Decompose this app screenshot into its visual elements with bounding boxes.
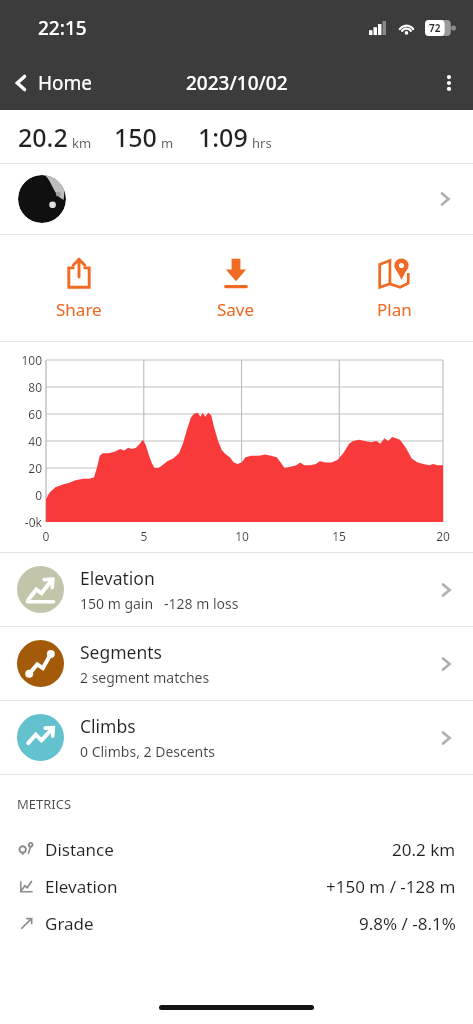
staticText: Save	[217, 298, 255, 321]
staticText: 1:09	[198, 120, 248, 154]
button[interactable]: Save	[157, 235, 315, 341]
staticText: Elevation	[80, 566, 155, 590]
staticText: Elevation	[45, 875, 118, 898]
staticText: 150 m gain -128 m loss	[80, 594, 239, 613]
staticText: hrs	[252, 134, 272, 152]
staticText: 60	[4, 406, 42, 422]
staticText: -0k	[4, 514, 42, 530]
button[interactable]: Elevation	[17, 868, 456, 905]
button[interactable]	[0, 164, 473, 234]
staticText: 20	[4, 460, 42, 476]
button[interactable]: Elevation	[0, 553, 473, 626]
staticText: 9.8% / -8.1%	[359, 912, 456, 935]
staticText: 20.2 km	[392, 838, 456, 861]
button[interactable]: Home	[0, 61, 105, 105]
staticText: 0 Climbs, 2 Descents	[80, 742, 216, 761]
staticText: 2023/10/02	[186, 70, 288, 96]
button[interactable]: Plan	[315, 235, 473, 341]
staticText: Distance	[45, 838, 114, 861]
button[interactable]: Share	[0, 235, 157, 341]
staticText: km	[72, 134, 92, 152]
staticText: 15	[329, 528, 349, 544]
staticText: 20	[433, 528, 453, 544]
staticText: m	[161, 134, 174, 152]
button[interactable]: Climbs	[0, 701, 473, 774]
staticText: 0	[36, 528, 56, 544]
staticText: 5	[134, 528, 154, 544]
staticText: Share	[56, 298, 102, 321]
staticText: METRICS	[17, 795, 72, 813]
staticText: 150	[114, 120, 157, 154]
staticText: Plan	[377, 298, 412, 321]
staticText: +150 m / -128 m	[326, 875, 456, 898]
button[interactable]: Segments	[0, 627, 473, 700]
staticText: 2 segment matches	[80, 668, 210, 687]
staticText: 22:15	[38, 15, 87, 41]
staticText: 20.2	[18, 120, 68, 154]
staticText: 72	[429, 21, 441, 35]
staticText: 100	[4, 352, 42, 368]
staticText: Home	[38, 70, 93, 96]
button[interactable]: Grade	[17, 905, 456, 942]
staticText: 0	[4, 487, 42, 503]
staticText: 80	[4, 379, 42, 395]
staticText: Segments	[80, 640, 162, 664]
button[interactable]: Distance	[17, 831, 456, 868]
staticText: 40	[4, 433, 42, 449]
staticText: Grade	[45, 912, 94, 935]
staticText: Climbs	[80, 714, 136, 738]
button[interactable]: More options	[425, 59, 473, 107]
staticText: 10	[232, 528, 252, 544]
